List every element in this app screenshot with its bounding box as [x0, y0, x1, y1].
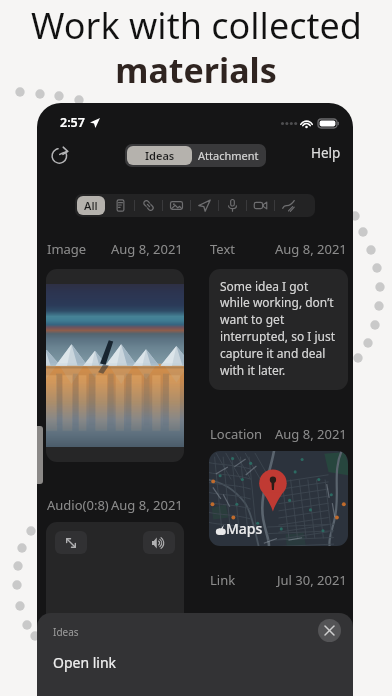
button[interactable]: Refresh — [44, 142, 76, 168]
staticText: Help — [311, 144, 341, 162]
button[interactable]: Close — [318, 619, 341, 642]
button[interactable]: Map location — [209, 451, 348, 546]
staticText: Maps — [226, 519, 263, 538]
staticText: Aug 8, 2021 — [111, 240, 183, 258]
button[interactable]: Notes — [107, 194, 134, 217]
button[interactable]: Images — [163, 194, 190, 217]
button[interactable]: All — [77, 196, 105, 215]
staticText: Link — [210, 571, 236, 589]
staticText: Attachment — [198, 148, 259, 163]
staticText: Audio(0:8) — [47, 496, 109, 514]
staticText: materials — [115, 47, 277, 93]
staticText: Image — [47, 240, 87, 258]
button[interactable]: Attachment — [192, 146, 264, 165]
button[interactable]: Video — [247, 194, 274, 217]
button[interactable] — [46, 269, 184, 462]
staticText: Ideas — [145, 148, 175, 163]
button[interactable]: Ideas — [127, 146, 192, 165]
staticText: Aug 8, 2021 — [111, 496, 183, 514]
staticText: Aug 8, 2021 — [275, 240, 347, 258]
staticText: Jul 30, 2021 — [277, 571, 347, 589]
staticText: Some idea I got while working, don’t wan… — [220, 278, 337, 379]
staticText: 2:57 — [60, 114, 85, 131]
staticText: Text — [210, 240, 235, 258]
staticText: Aug 8, 2021 — [275, 425, 347, 443]
staticText: Ideas — [53, 625, 79, 639]
button[interactable]: Links — [135, 194, 162, 217]
staticText: All — [84, 198, 98, 213]
button[interactable]: Some idea I got while working, don’t wan… — [209, 269, 348, 390]
button[interactable]: Location — [191, 194, 218, 217]
button[interactable]: Scribble — [275, 194, 302, 217]
staticText: Work with collected — [31, 1, 362, 50]
button[interactable]: Open link — [53, 653, 117, 672]
staticText: Location — [210, 425, 263, 443]
button[interactable]: Audio — [219, 194, 246, 217]
button[interactable] — [46, 522, 184, 652]
button[interactable]: Help — [309, 142, 343, 168]
